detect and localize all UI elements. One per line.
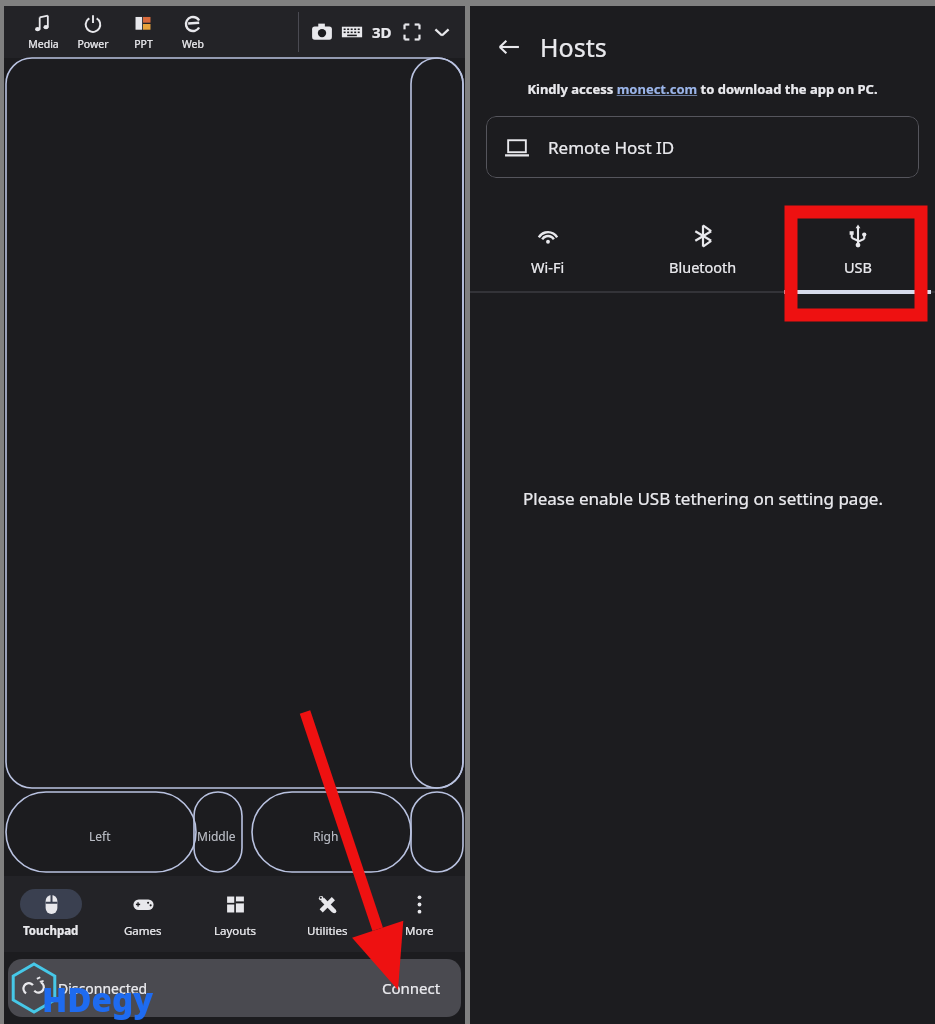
staticText: 3D bbox=[372, 22, 392, 42]
button[interactable]: Bluetooth bbox=[625, 206, 780, 294]
button[interactable]: Utilities bbox=[281, 876, 373, 952]
button[interactable]: Remote Host ID bbox=[486, 116, 919, 178]
staticText: Kindly access monect.com to download the… bbox=[527, 80, 878, 98]
staticText: Middle bbox=[197, 828, 236, 844]
staticText: USB bbox=[844, 257, 872, 277]
button[interactable]: Disconnected bbox=[8, 959, 461, 1017]
button[interactable]: Screenshot bbox=[307, 17, 337, 47]
staticText: Wi-Fi bbox=[531, 257, 565, 277]
staticText: Web bbox=[182, 37, 204, 51]
button[interactable]: Middle bbox=[193, 58, 240, 876]
staticText: Disconnected bbox=[58, 979, 148, 998]
staticText: Righ bbox=[313, 828, 339, 844]
button[interactable]: PPT bbox=[118, 6, 168, 58]
staticText: Left bbox=[89, 828, 111, 844]
staticText: Please enable USB tethering on setting p… bbox=[523, 487, 883, 510]
staticText: HDegy bbox=[42, 977, 154, 1022]
staticText: Connect bbox=[382, 978, 441, 998]
staticText: Bluetooth bbox=[669, 257, 737, 277]
button[interactable]: Collapse bbox=[427, 17, 457, 47]
button[interactable]: Layouts bbox=[189, 876, 281, 952]
staticText: Hosts bbox=[540, 30, 607, 64]
button[interactable]: Games bbox=[97, 876, 189, 952]
staticText: Power bbox=[77, 37, 109, 51]
button[interactable]: Scroll strip bbox=[412, 58, 463, 876]
button[interactable]: Keyboard bbox=[337, 17, 367, 47]
staticText: Media bbox=[28, 37, 59, 51]
button[interactable]: More bbox=[373, 876, 465, 952]
button[interactable]: Back bbox=[492, 30, 526, 64]
button[interactable]: Touchpad bbox=[4, 876, 97, 952]
button[interactable]: Media bbox=[18, 6, 68, 58]
staticText: Remote Host ID bbox=[548, 136, 675, 159]
button[interactable]: USB bbox=[780, 206, 935, 294]
button[interactable]: 3D mode bbox=[367, 17, 397, 47]
button[interactable]: Righ bbox=[240, 58, 412, 876]
button[interactable]: Left bbox=[6, 58, 193, 876]
button[interactable]: Web bbox=[168, 6, 218, 58]
button[interactable]: Power bbox=[68, 6, 118, 58]
staticText: Touchpad bbox=[23, 923, 79, 939]
staticText: Utilities bbox=[307, 923, 348, 939]
staticText: PPT bbox=[134, 37, 153, 51]
button[interactable]: Wi-Fi bbox=[470, 206, 625, 294]
staticText: Games bbox=[124, 923, 162, 939]
staticText: Layouts bbox=[214, 923, 257, 939]
staticText: More bbox=[405, 923, 434, 939]
button[interactable]: Fullscreen bbox=[397, 17, 427, 47]
